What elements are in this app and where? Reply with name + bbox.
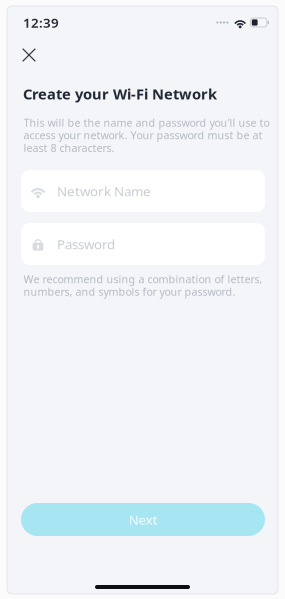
button[interactable]: Password	[21, 223, 265, 265]
staticText: We recommend using a combination of lett…	[23, 272, 262, 299]
button[interactable]: Next	[21, 503, 265, 536]
staticText: This will be the name and password you'l…	[23, 115, 269, 155]
button[interactable]: Network Name	[21, 170, 265, 212]
staticText: Network Name	[57, 182, 151, 200]
staticText: Create your Wi-Fi Network	[23, 84, 217, 103]
staticText: Next	[128, 511, 157, 528]
staticText: 12:39	[23, 14, 59, 31]
staticText: Password	[57, 235, 115, 253]
button[interactable]: Close	[16, 42, 42, 68]
